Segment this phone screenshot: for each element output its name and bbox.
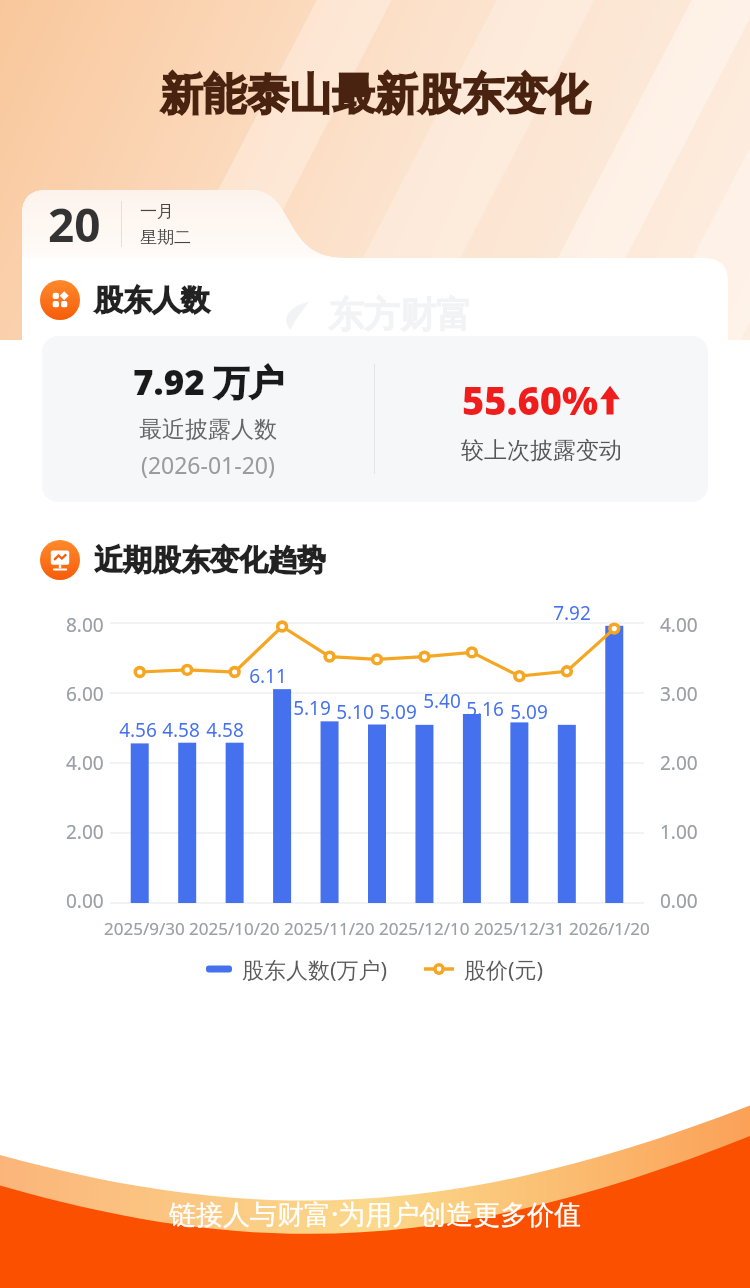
button[interactable]: 股东人数	[40, 280, 750, 320]
staticText: 8.00	[66, 612, 104, 638]
staticText: 55.60%	[462, 374, 599, 426]
staticText: 链接人与财富·为用户创造更多价值	[169, 1195, 582, 1232]
staticText: 股东人数(万户)	[242, 954, 388, 984]
staticText: 4.56	[116, 717, 160, 743]
staticText: 7.92	[550, 600, 594, 626]
staticText: 7.92 万户	[133, 358, 284, 406]
staticText: 5.09	[507, 699, 551, 725]
staticText: 东方财富	[328, 292, 472, 337]
staticText: 5.40	[420, 688, 464, 714]
staticText: 20	[48, 193, 101, 256]
staticText: 近期股东变化趋势	[94, 542, 326, 579]
staticText: 4.00	[66, 750, 104, 776]
staticText: 股东人数	[94, 282, 210, 319]
staticText: 星期二	[140, 227, 191, 248]
staticText: 2025/12/31	[474, 917, 565, 940]
staticText: 2025/11/20	[284, 917, 375, 940]
staticText: (2026-01-20)	[141, 449, 275, 480]
staticText: 2025/10/20	[189, 917, 280, 940]
staticText: 6.00	[66, 681, 104, 707]
staticText: 4.58	[203, 717, 247, 743]
staticText: 0.00	[660, 888, 698, 914]
staticText: 一月	[140, 201, 174, 222]
staticText: 2026/1/20	[569, 917, 650, 940]
other: 近期股东变化趋势	[40, 540, 80, 580]
staticText: 2.00	[660, 750, 698, 776]
staticText: 新能泰山最新股东变化	[160, 68, 590, 122]
staticText: 5.16	[463, 696, 507, 722]
staticText: 4.00	[660, 612, 698, 638]
staticText: 股价(元)	[464, 954, 544, 984]
staticText: 较上次披露变动	[461, 436, 622, 465]
staticText: 2.00	[66, 819, 104, 845]
button[interactable]: 7.92 万户	[42, 336, 708, 502]
staticText: 6.11	[246, 663, 290, 689]
staticText: 4.58	[159, 717, 203, 743]
staticText: 5.10	[333, 699, 377, 725]
staticText: 1.00	[660, 819, 698, 845]
staticText: 2025/9/30	[104, 917, 185, 940]
staticText: 最近披露人数	[139, 415, 277, 444]
other: 股东人数	[40, 280, 80, 320]
staticText: 5.09	[376, 699, 420, 725]
staticText: 3.00	[660, 681, 698, 707]
staticText: 2025/12/10	[379, 917, 470, 940]
button[interactable]: 近期股东变化趋势	[40, 540, 750, 580]
staticText: 5.19	[290, 695, 334, 721]
staticText: 0.00	[66, 888, 104, 914]
